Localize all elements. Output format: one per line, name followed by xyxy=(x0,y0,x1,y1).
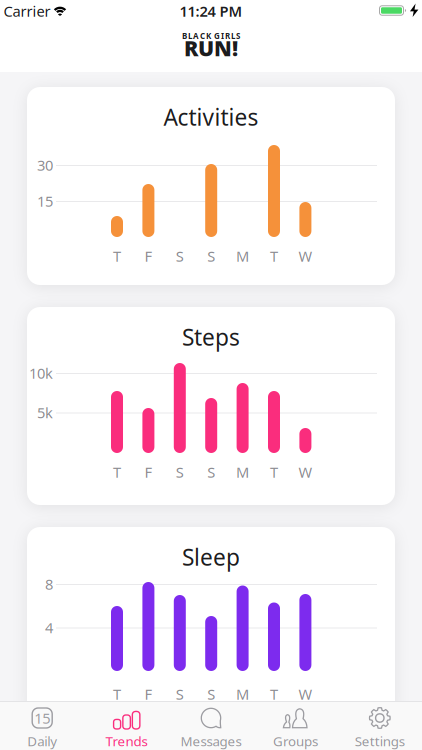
staticText: S xyxy=(176,684,184,704)
button[interactable]: Messages xyxy=(169,701,253,750)
staticText: T xyxy=(113,246,121,266)
staticText: 10k xyxy=(29,363,53,383)
staticText: W xyxy=(298,462,312,482)
staticText: RUN! xyxy=(184,34,238,62)
staticText: S xyxy=(176,246,184,266)
staticText: 15 xyxy=(37,191,53,211)
staticText: T xyxy=(270,684,278,704)
staticText: Trends xyxy=(106,732,148,750)
staticText: B L A C K G I R L S xyxy=(182,31,240,41)
staticText: Sleep xyxy=(182,542,240,572)
staticText: T xyxy=(270,246,278,266)
staticText: 15 xyxy=(34,708,50,728)
staticText: M xyxy=(236,246,249,266)
staticText: Steps xyxy=(182,322,240,352)
staticText: S xyxy=(207,246,215,266)
staticText: W xyxy=(298,684,312,704)
staticText: F xyxy=(144,684,152,704)
button[interactable]: 15 xyxy=(0,701,84,750)
staticText: S xyxy=(207,462,215,482)
staticText: Activities xyxy=(163,102,258,132)
staticText: 4 xyxy=(45,618,53,637)
button[interactable]: Settings xyxy=(338,701,422,750)
staticText: Messages xyxy=(180,732,241,750)
staticText: 5k xyxy=(37,403,53,422)
staticText: T xyxy=(270,462,278,482)
button[interactable]: Trends xyxy=(84,701,169,750)
staticText: W xyxy=(298,246,312,266)
staticText: T xyxy=(113,684,121,704)
staticText: 11:24 PM xyxy=(179,1,242,21)
staticText: T xyxy=(113,462,121,482)
staticText: Daily xyxy=(27,732,57,750)
staticText: S xyxy=(207,684,215,704)
button[interactable]: Groups xyxy=(253,701,338,750)
staticText: M xyxy=(236,684,249,704)
staticText: F xyxy=(144,462,152,482)
staticText: 8 xyxy=(45,574,53,594)
staticText: Groups xyxy=(273,732,318,750)
staticText: 30 xyxy=(37,155,53,175)
staticText: M xyxy=(236,462,249,482)
staticText: Carrier xyxy=(3,1,50,21)
staticText: S xyxy=(176,462,184,482)
staticText: Settings xyxy=(355,732,405,750)
staticText: F xyxy=(144,246,152,266)
